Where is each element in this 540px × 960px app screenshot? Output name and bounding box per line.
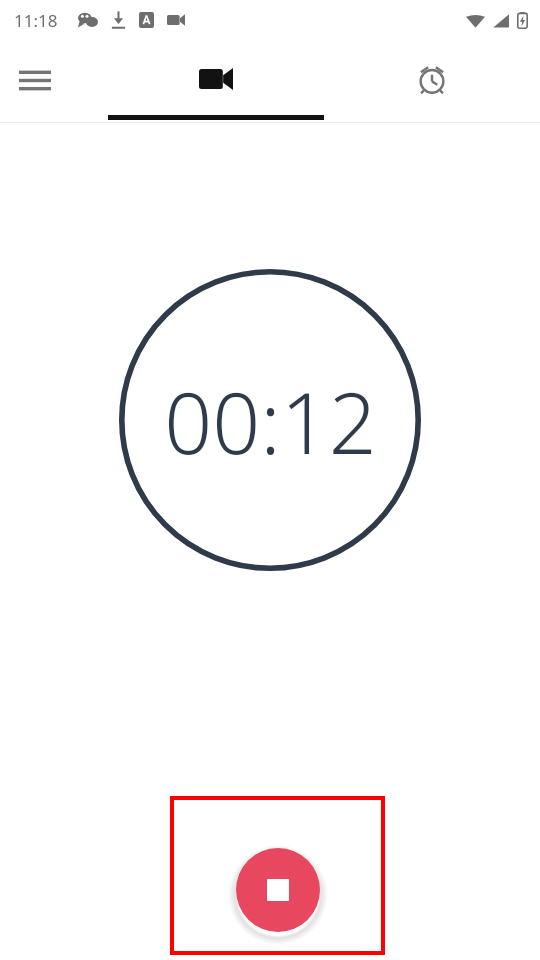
staticText: 11:18 [14, 9, 58, 32]
staticText: 00:12 [164, 364, 377, 478]
button[interactable]: Alarms tab [324, 40, 540, 118]
button[interactable]: Open navigation menu [8, 53, 62, 107]
button[interactable]: Recorder tab, selected [108, 40, 324, 118]
button[interactable]: Stop recording [170, 796, 385, 955]
button[interactable]: Recording timer 00:12 [119, 269, 421, 571]
